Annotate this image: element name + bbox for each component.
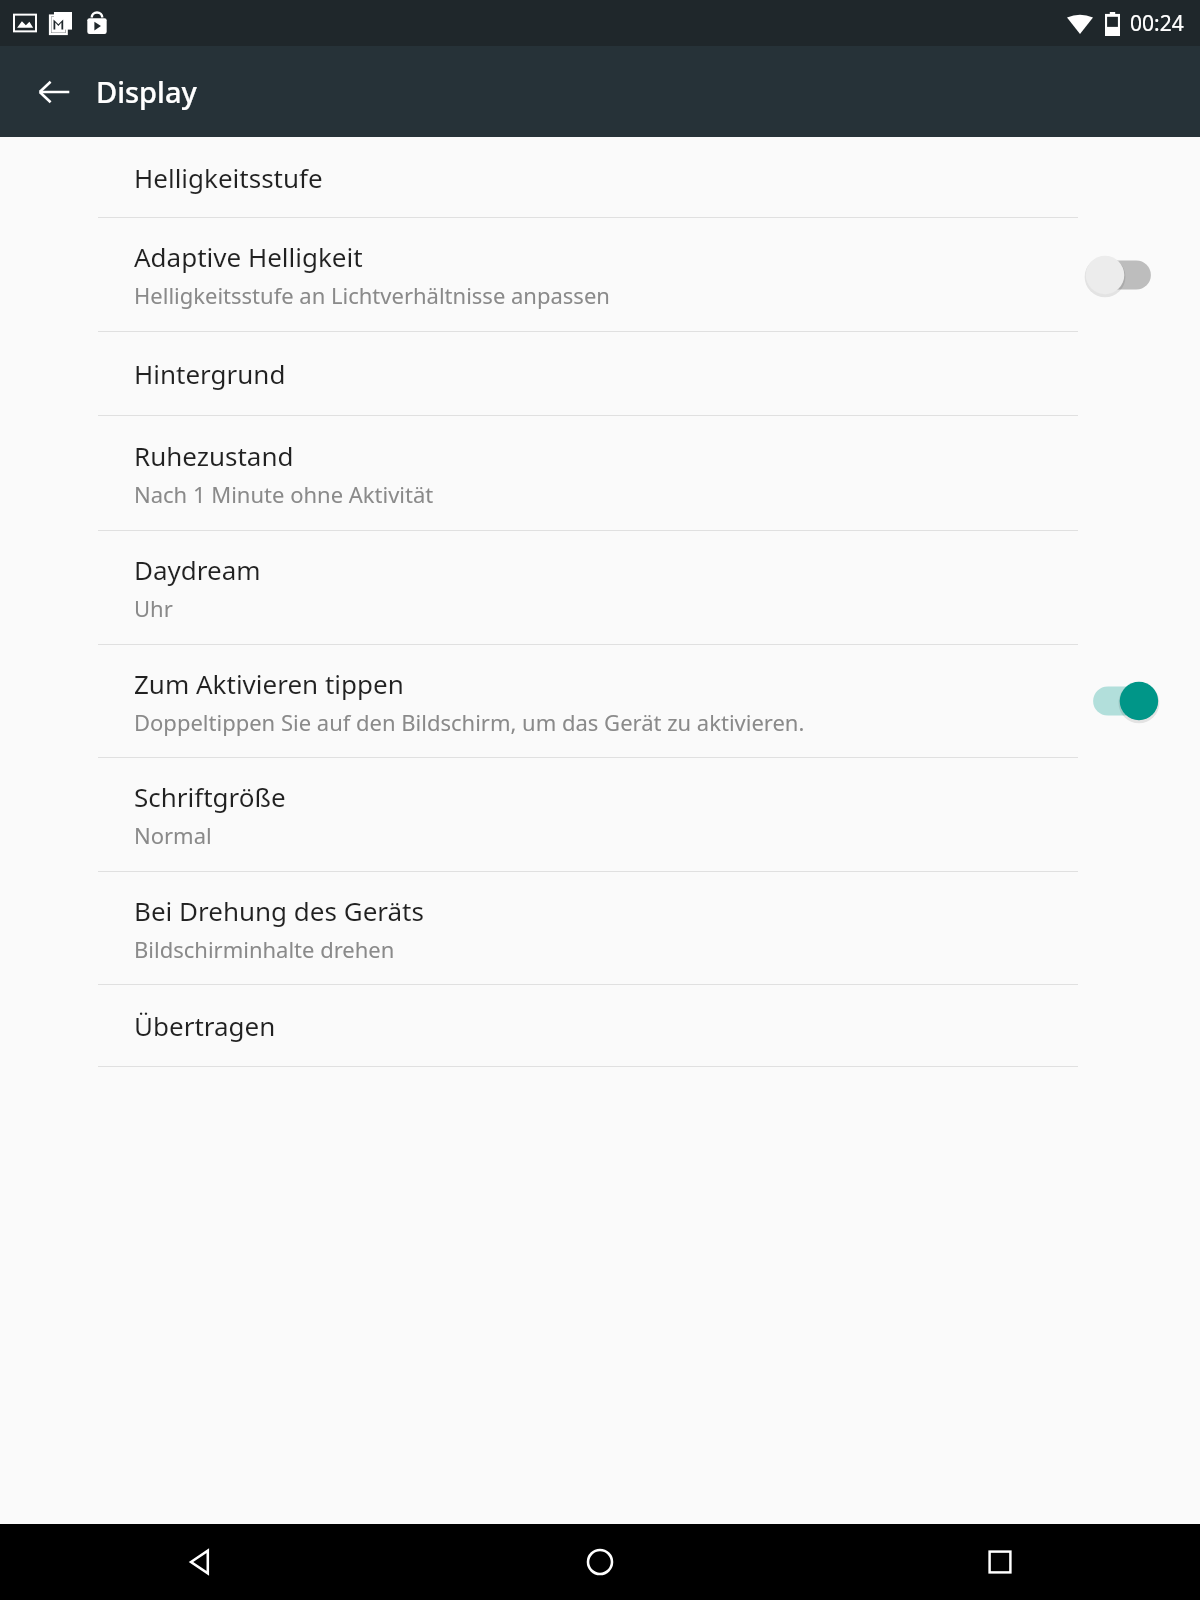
staticText: Hintergrund [134, 356, 286, 391]
staticText: Übertragen [134, 1008, 276, 1043]
button[interactable]: Ruhezustand [0, 416, 1200, 530]
button[interactable]: Helligkeitsstufe [0, 137, 1200, 217]
button[interactable]: Aktiviert [1084, 675, 1160, 727]
staticText: Uhr [134, 593, 173, 623]
button[interactable]: Übertragen [0, 985, 1200, 1066]
button[interactable]: Schriftgröße [0, 758, 1200, 871]
staticText: Ruhezustand [134, 438, 294, 473]
staticText: Helligkeitsstufe [134, 160, 323, 195]
button[interactable]: Adaptive Helligkeit [0, 218, 1200, 331]
button[interactable]: Hintergrund [0, 332, 1200, 415]
button[interactable]: Zurück [22, 60, 86, 124]
staticText: Zum Aktivieren tippen [134, 666, 404, 701]
button[interactable]: Zurück [0, 1524, 400, 1600]
staticText: Daydream [134, 552, 261, 587]
staticText: Nach 1 Minute ohne Aktivität [134, 479, 434, 509]
button[interactable]: Bei Drehung des Geräts [0, 872, 1200, 984]
staticText: Adaptive Helligkeit [134, 239, 363, 274]
staticText: Bildschirminhalte drehen [134, 934, 395, 964]
staticText: Display [96, 72, 197, 111]
staticText: Bei Drehung des Geräts [134, 893, 424, 928]
staticText: 00:24 [1130, 9, 1184, 38]
button[interactable]: Zum Aktivieren tippen [0, 645, 1200, 757]
button[interactable]: Deaktiviert [1084, 249, 1160, 301]
button[interactable]: Startbildschirm [400, 1524, 800, 1600]
button[interactable]: Übersicht [800, 1524, 1200, 1600]
staticText: Doppeltippen Sie auf den Bildschirm, um … [134, 707, 805, 737]
button[interactable]: Daydream [0, 531, 1200, 644]
staticText: Schriftgröße [134, 779, 286, 814]
staticText: Normal [134, 820, 212, 850]
staticText: Helligkeitsstufe an Lichtverhältnisse an… [134, 280, 610, 310]
